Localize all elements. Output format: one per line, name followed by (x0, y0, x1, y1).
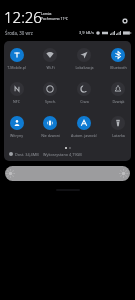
staticText: Dost. 34,4MB (15, 152, 39, 157)
button[interactable]: T-Mobile.pl (0, 41, 33, 70)
button[interactable]: Cisza (67, 75, 101, 104)
staticText: Lokalizacja (75, 65, 94, 70)
staticText: Autom. jasność (71, 133, 97, 138)
staticText: Synch. (45, 99, 56, 104)
staticText: Wykorzystano 4,79GB (43, 152, 82, 157)
staticText: Pochmurno 11°C (41, 16, 68, 21)
button[interactable]: NFC (0, 75, 33, 104)
staticText: Dzwięk (112, 99, 125, 104)
button[interactable]: Settings (118, 14, 132, 28)
staticText: 3,9 kB/s (79, 30, 94, 35)
button[interactable]: Dzwięk (101, 75, 135, 104)
staticText: Bluetooth (110, 65, 127, 70)
button[interactable]: Lokalizacja (67, 41, 101, 70)
button[interactable]: Autom. jasność (67, 109, 101, 138)
staticText: Nie dzwoni (41, 133, 60, 138)
button[interactable]: Brightness (5, 166, 130, 181)
button[interactable]: Synch. (33, 75, 67, 104)
button[interactable]: Latarka (101, 109, 135, 138)
staticText: Wi-Fi (46, 65, 55, 70)
button[interactable]: Bluetooth (101, 41, 135, 70)
staticText: Latarka (112, 133, 125, 138)
staticText: NFC (13, 99, 20, 104)
staticText: Lomża (41, 11, 52, 16)
button[interactable]: Wi-Fi (33, 41, 67, 70)
button[interactable]: Nie dzwoni (33, 109, 67, 138)
staticText: Witryny (10, 133, 23, 138)
staticText: Środa, 30 wrz (5, 30, 33, 36)
button[interactable]: Witryny (0, 109, 33, 138)
staticText: T-Mobile.pl (7, 65, 26, 70)
staticText: 12:26 (4, 7, 42, 27)
staticText: Cisza (80, 99, 89, 104)
